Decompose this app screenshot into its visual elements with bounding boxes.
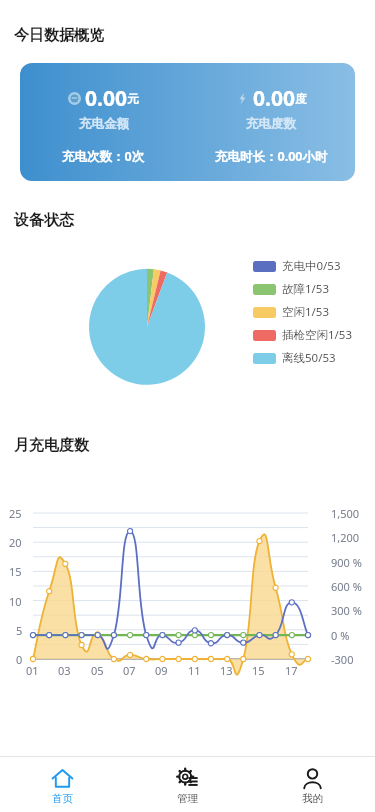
- staticText: 0 %: [331, 628, 350, 643]
- staticText: 充电金额: [79, 116, 129, 132]
- staticText: 今日数据概览: [14, 26, 104, 45]
- staticText: 15: [9, 564, 22, 579]
- staticText: 13: [220, 663, 233, 678]
- button[interactable]: 故障1/53: [253, 281, 330, 297]
- staticText: 元: [127, 92, 139, 106]
- staticText: 0: [16, 652, 23, 667]
- staticText: 月充电度数: [14, 436, 89, 455]
- button[interactable]: 我的: [250, 764, 375, 805]
- staticText: 充电度数: [246, 116, 296, 132]
- button[interactable]: 插枪空闲1/53: [253, 327, 353, 343]
- staticText: 10: [9, 594, 22, 609]
- staticText: 15: [252, 663, 265, 678]
- staticText: 管理: [177, 792, 198, 805]
- staticText: 09: [155, 663, 168, 678]
- staticText: 离线50/53: [282, 350, 336, 366]
- staticText: 300 %: [331, 603, 362, 618]
- staticText: 05: [91, 663, 104, 678]
- button[interactable]: 管理: [125, 764, 250, 805]
- staticText: 度: [295, 92, 307, 106]
- staticText: 充电时长：0.00小时: [215, 148, 328, 165]
- staticText: 17: [285, 663, 298, 678]
- staticText: 900 %: [331, 555, 362, 570]
- staticText: 600 %: [331, 579, 362, 594]
- staticText: 充电中0/53: [282, 258, 341, 274]
- button[interactable]: 充电中0/53: [253, 258, 341, 274]
- staticText: 11: [188, 663, 201, 678]
- staticText: 1,200: [331, 530, 360, 545]
- staticText: -300: [331, 652, 354, 667]
- button[interactable]: 离线50/53: [253, 350, 336, 366]
- staticText: 插枪空闲1/53: [282, 327, 353, 343]
- staticText: 设备状态: [14, 211, 74, 230]
- staticText: 01: [26, 663, 39, 678]
- staticText: 首页: [52, 792, 73, 805]
- staticText: 03: [58, 663, 71, 678]
- staticText: 5: [16, 623, 23, 638]
- staticText: 1,500: [331, 506, 360, 521]
- staticText: 0.00: [85, 84, 127, 113]
- staticText: 0.00: [253, 84, 295, 113]
- staticText: 07: [123, 663, 136, 678]
- staticText: 20: [9, 535, 22, 550]
- button[interactable]: 首页: [0, 764, 125, 805]
- staticText: 充电次数：0次: [62, 148, 145, 165]
- staticText: 空闲1/53: [282, 304, 330, 320]
- button[interactable]: 空闲1/53: [253, 304, 330, 320]
- staticText: 我的: [302, 792, 323, 805]
- staticText: 25: [9, 506, 22, 521]
- button[interactable]: 0.00: [20, 63, 355, 181]
- staticText: 故障1/53: [282, 281, 330, 297]
